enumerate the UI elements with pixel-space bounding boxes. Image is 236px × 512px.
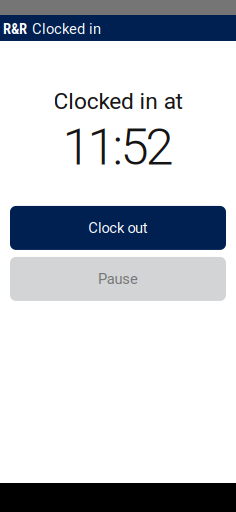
button[interactable]: Clock out (10, 206, 226, 250)
staticText: Pause (98, 270, 138, 287)
staticText: Clock out (88, 219, 148, 236)
staticText: R&R (3, 20, 27, 38)
button[interactable]: Pause (10, 257, 226, 301)
staticText: 11:52 (62, 118, 173, 177)
staticText: Clocked in (32, 20, 101, 38)
staticText: Clocked in at (53, 88, 182, 115)
